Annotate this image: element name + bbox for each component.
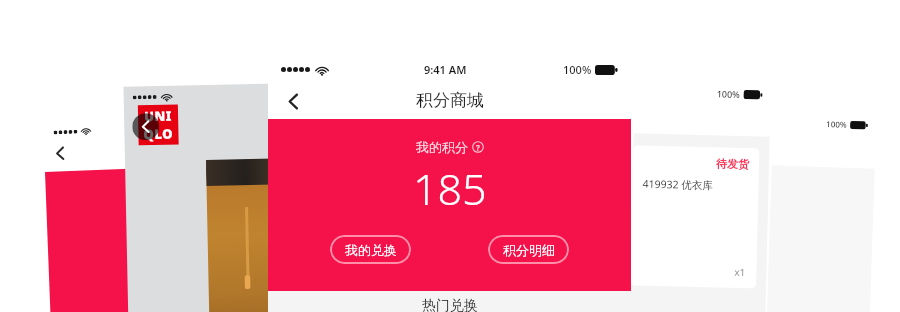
staticText: 我的兑换 <box>345 242 397 258</box>
staticText: QLO <box>143 125 174 143</box>
staticText: 100% <box>563 62 592 77</box>
staticText: 待发货 <box>716 156 749 171</box>
staticText: 9:41 AM <box>424 62 467 77</box>
staticText: 100% <box>717 87 741 100</box>
button[interactable]: 积分明细 <box>488 235 569 264</box>
button[interactable]: Back <box>276 84 310 118</box>
staticText: 积分商城 <box>416 90 484 111</box>
staticText: 100% <box>826 118 847 130</box>
staticText: ? <box>476 142 480 153</box>
staticText: 热门兑换 <box>422 297 478 312</box>
staticText: 419932 优衣库 <box>642 177 714 192</box>
button[interactable]: Back <box>132 113 160 140</box>
button[interactable]: 我的兑换 <box>330 235 411 264</box>
staticText: 185 <box>413 159 487 218</box>
staticText: x1 <box>734 265 746 279</box>
staticText: 我的积分 <box>416 139 468 155</box>
staticText: UNI <box>144 107 172 125</box>
staticText: 积分明细 <box>503 242 555 258</box>
button[interactable]: Help <box>472 141 484 153</box>
